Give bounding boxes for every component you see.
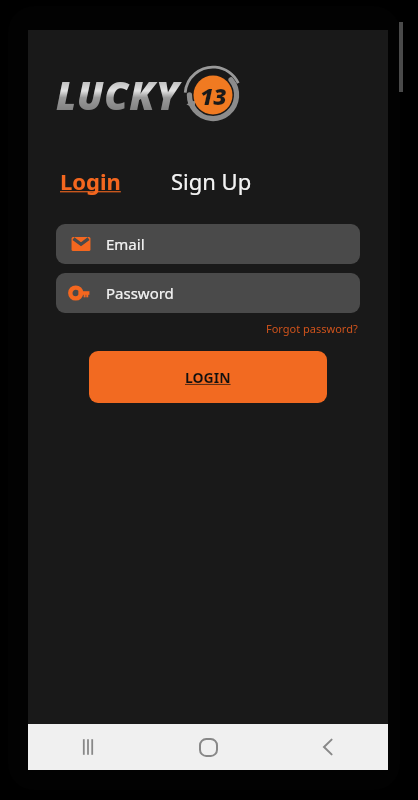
- button[interactable]: LOGIN: [89, 351, 327, 403]
- staticText: Email: [106, 234, 145, 254]
- button[interactable]: Password: [56, 273, 360, 313]
- staticText: 13: [200, 80, 227, 111]
- button[interactable]: Recent apps: [28, 724, 148, 770]
- button[interactable]: Login: [58, 160, 123, 202]
- button[interactable]: Home: [148, 724, 268, 770]
- button[interactable]: Sign Up: [169, 160, 254, 202]
- button[interactable]: Forgot password?: [264, 319, 360, 338]
- staticText: Sign Up: [171, 166, 252, 196]
- staticText: Login: [60, 166, 121, 196]
- staticText: LUCKY: [56, 69, 180, 121]
- button[interactable]: Back: [268, 724, 388, 770]
- staticText: Forgot password?: [266, 321, 358, 336]
- staticText: LOGIN: [185, 368, 231, 387]
- button[interactable]: Email: [56, 224, 360, 264]
- staticText: Password: [106, 283, 174, 303]
